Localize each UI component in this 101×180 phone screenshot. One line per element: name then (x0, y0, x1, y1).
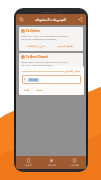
button[interactable]: Tv Online (19, 27, 83, 51)
staticText: تشغيل الفيديو (58, 44, 74, 48)
staticText: المفضلة (48, 164, 56, 167)
button[interactable]: حفظ (35, 87, 45, 92)
staticText: Tv Best Chanel (26, 55, 48, 59)
button[interactable]: حذف من القائمة (21, 69, 51, 75)
staticText: تشغيل الفيديو (58, 70, 74, 74)
staticText: حفظ (37, 88, 43, 91)
staticText: الفيديوهات المحفوظة (35, 17, 67, 22)
staticText: Tv Online (26, 29, 41, 33)
staticText: إلغاء (24, 88, 30, 91)
staticText: حذف من القائمة (27, 70, 46, 74)
button[interactable]: Tv Best Chanel (19, 53, 83, 77)
button[interactable]: تشغيل الفيديو (51, 69, 81, 75)
button[interactable]: حذف من القائمة (21, 43, 51, 49)
staticText: القنوات (24, 164, 32, 167)
button[interactable]: إلغاء (22, 87, 32, 92)
button[interactable]: Share (77, 16, 84, 23)
button[interactable]: القنوات (16, 156, 40, 169)
button[interactable]: تشغيل الفيديو (51, 43, 81, 49)
staticText: Tv (24, 78, 27, 82)
button[interactable]: Search (18, 16, 25, 23)
staticText: https://81.100.112.180/?usertv=0/returls… (21, 34, 69, 40)
staticText: الإعدادات (70, 164, 79, 167)
button[interactable]: Tv (22, 75, 81, 84)
staticText: تعديل الفيديو (65, 69, 81, 73)
button[interactable]: الإعدادات (63, 156, 86, 169)
staticText: Online (29, 78, 38, 82)
button[interactable]: المفضلة (40, 156, 63, 169)
staticText: حذف من القائمة (27, 44, 46, 48)
staticText: https://86.10.56.533.60/?usertv=0/x0ser … (21, 60, 68, 66)
